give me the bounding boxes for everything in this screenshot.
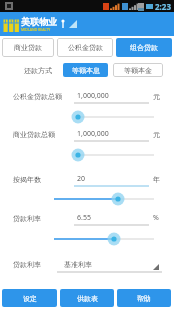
staticText: 帮助 bbox=[137, 294, 151, 303]
button[interactable]: 商业贷款 bbox=[2, 38, 54, 57]
staticText: 2:23 bbox=[155, 1, 171, 12]
staticText: 供款表 bbox=[77, 294, 98, 303]
button[interactable]: 组合贷款 bbox=[116, 38, 172, 57]
staticText: 6.55 bbox=[77, 213, 91, 223]
staticText: 商业贷款总额 bbox=[13, 130, 55, 139]
button[interactable]: Slider bbox=[0, 232, 174, 246]
button[interactable]: Slider bbox=[0, 110, 174, 124]
staticText: MIDLAND REALTY bbox=[21, 27, 51, 32]
staticText: 元 bbox=[153, 92, 160, 101]
button[interactable]: 公积金贷款 bbox=[57, 38, 113, 57]
staticText: 年 bbox=[153, 175, 160, 184]
button[interactable]: 供款表 bbox=[60, 289, 114, 307]
staticText: 元 bbox=[153, 130, 160, 139]
button[interactable]: 帮助 bbox=[117, 289, 171, 307]
staticText: 公积金贷款 bbox=[68, 43, 103, 52]
staticText: 20 bbox=[77, 174, 86, 184]
staticText: 还款方式 bbox=[24, 66, 52, 75]
staticText: 1,000,000 bbox=[77, 129, 109, 139]
staticText: 美联物业 bbox=[21, 16, 57, 27]
staticText: 设定 bbox=[23, 294, 37, 303]
button[interactable]: Slider bbox=[0, 192, 174, 206]
staticText: 等额本金 bbox=[124, 66, 152, 75]
staticText: 1,000,000 bbox=[77, 91, 109, 101]
button[interactable]: 基准利率 bbox=[57, 256, 162, 273]
staticText: 贷款利率 bbox=[13, 260, 41, 269]
staticText: % bbox=[153, 213, 159, 223]
staticText: 公积金贷款总额 bbox=[13, 92, 62, 101]
button[interactable]: 等额本金 bbox=[113, 63, 163, 77]
button[interactable]: 等额本息 bbox=[63, 63, 108, 77]
staticText: 按揭年数 bbox=[13, 175, 41, 184]
staticText: 基准利率 bbox=[64, 260, 92, 269]
staticText: 组合贷款 bbox=[130, 43, 158, 52]
button[interactable]: 设定 bbox=[2, 289, 57, 307]
staticText: 等额本息 bbox=[72, 66, 100, 75]
staticText: 贷款利率 bbox=[13, 214, 41, 223]
button[interactable]: Slider bbox=[0, 148, 174, 162]
staticText: 商业贷款 bbox=[14, 43, 42, 52]
